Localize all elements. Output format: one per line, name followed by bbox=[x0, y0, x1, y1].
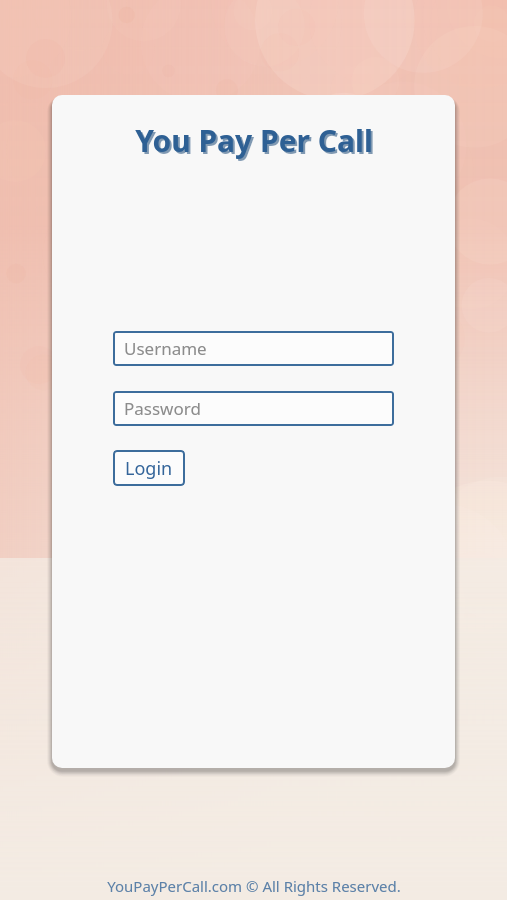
button[interactable]: Login bbox=[113, 450, 185, 486]
staticText: YouPayPerCall.com © All Rights Reserved. bbox=[107, 876, 401, 896]
button[interactable]: Password bbox=[113, 391, 394, 426]
staticText: Password bbox=[124, 397, 201, 420]
staticText: You Pay Per Call bbox=[135, 120, 373, 161]
staticText: Username bbox=[124, 337, 207, 360]
staticText: You Pay Per Call bbox=[137, 122, 375, 163]
button[interactable]: Username bbox=[113, 331, 394, 366]
staticText: Login bbox=[125, 456, 173, 481]
